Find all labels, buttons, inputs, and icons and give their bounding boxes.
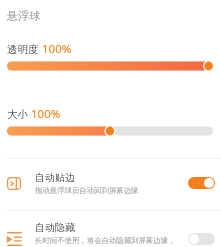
staticText: 自动隐藏 (35, 221, 75, 234)
staticText: 大小 (7, 108, 28, 121)
button[interactable]: Auto snap to edge toggle (188, 177, 215, 189)
staticText: 透明度 (7, 43, 39, 56)
button[interactable]: 自动贴边 (0, 159, 221, 210)
button[interactable]: 自动隐藏 (0, 211, 221, 247)
staticText: 自动贴边 (35, 171, 75, 184)
staticText: 100% (31, 106, 61, 122)
staticText: 拖动悬浮球后自动回到屏幕边缘 (35, 186, 139, 195)
staticText: 悬浮球 (7, 9, 40, 23)
button[interactable]: Auto hide toggle (188, 233, 215, 245)
button[interactable]: Slider (0, 61, 221, 71)
staticText: 100% (42, 41, 72, 57)
button[interactable]: Slider (0, 126, 221, 136)
staticText: 长时间不使用，将会自动隐藏到屏幕边缘， (35, 236, 176, 245)
